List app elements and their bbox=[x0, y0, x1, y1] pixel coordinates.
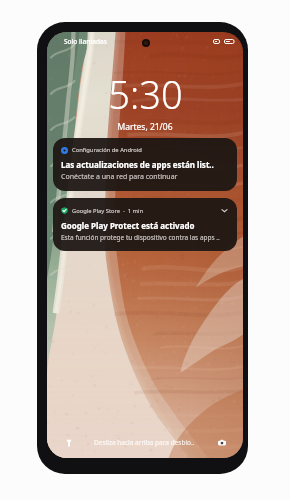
staticText: Solo llamadas bbox=[64, 37, 107, 46]
staticText: Google Play Store · 1 min bbox=[72, 207, 144, 215]
button[interactable]: Cámara bbox=[214, 435, 229, 450]
staticText: Configuración de Android bbox=[72, 146, 142, 154]
button[interactable]: Configuración de Android bbox=[53, 138, 237, 191]
staticText: Google Play Protect está activado bbox=[61, 220, 195, 231]
staticText: Martes, 21/06 bbox=[117, 121, 173, 133]
other: Expandir bbox=[220, 206, 229, 215]
button[interactable]: Linterna bbox=[61, 435, 76, 450]
staticText: Esta función protege tu dispositivo cont… bbox=[61, 233, 220, 242]
staticText: Conéctate a una red para continuar bbox=[61, 172, 178, 182]
staticText: Desliza hacia arriba para desblo.. bbox=[94, 438, 195, 447]
staticText: 5:30 bbox=[108, 68, 183, 120]
staticText: Las actualizaciones de apps están list.. bbox=[61, 159, 214, 170]
button[interactable]: Google Play Store · 1 min bbox=[53, 198, 237, 251]
